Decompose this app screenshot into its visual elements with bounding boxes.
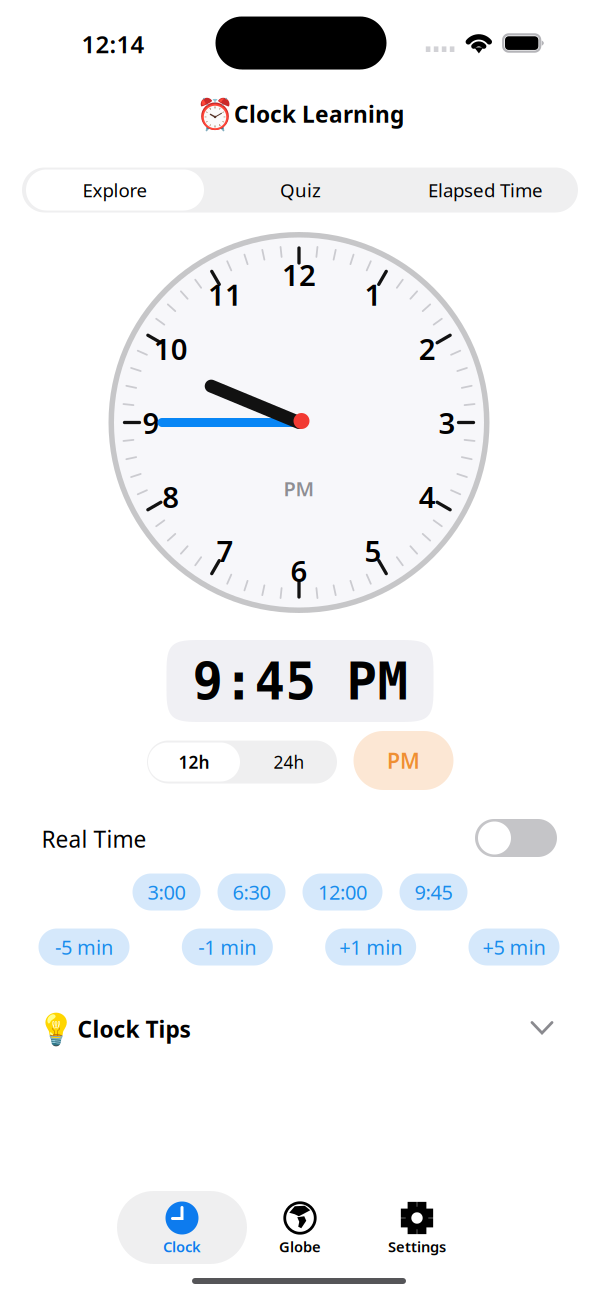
staticText: Globe [279, 1237, 321, 1256]
staticText: 12h [178, 750, 209, 773]
staticText: ⏰ [196, 97, 234, 132]
button[interactable]: 6:30 [217, 873, 285, 910]
staticText: 6 [290, 551, 307, 590]
staticText: 12 [282, 255, 316, 294]
staticText: 4 [419, 477, 436, 516]
staticText: Clock Tips [77, 1014, 190, 1044]
button[interactable]: Settings [352, 1191, 482, 1264]
button[interactable]: 12h [148, 742, 240, 781]
staticText: 9 [142, 403, 159, 442]
button[interactable]: Elapsed Time [395, 167, 575, 212]
staticText: PM [346, 653, 408, 711]
button[interactable]: -5 min [38, 928, 129, 965]
staticText: 7 [216, 531, 233, 570]
button[interactable]: -1 min [182, 928, 273, 965]
staticText: Settings [388, 1237, 446, 1256]
staticText: -1 min [198, 934, 256, 960]
button[interactable]: 24h [243, 742, 335, 781]
button[interactable]: +1 min [325, 928, 416, 965]
staticText: 1 [364, 275, 381, 314]
staticText: 11 [208, 275, 242, 314]
staticText: 9:45 [414, 879, 452, 905]
button[interactable]: Clock [117, 1191, 247, 1264]
button[interactable]: 9:45 [399, 873, 467, 910]
button[interactable]: Quiz [210, 167, 390, 212]
staticText: Real Time [41, 824, 146, 854]
button[interactable]: 💡 [22, 1002, 578, 1058]
staticText: 💡 [37, 1012, 75, 1047]
button[interactable]: Real Time [475, 819, 557, 857]
staticText: PM [387, 746, 420, 775]
staticText: 5 [364, 531, 381, 570]
staticText: Clock Learning [234, 99, 404, 129]
button[interactable]: Explore [26, 169, 204, 210]
staticText: Elapsed Time [428, 178, 543, 202]
button[interactable]: 3:00 [132, 873, 200, 910]
staticText: Explore [82, 178, 147, 202]
staticText: +1 min [339, 934, 402, 960]
staticText: Quiz [280, 178, 321, 202]
staticText: 3:00 [147, 879, 185, 905]
staticText: 12:00 [318, 879, 367, 905]
button[interactable]: 12:00 [302, 873, 382, 910]
staticText: 12:14 [81, 28, 144, 60]
staticText: 8 [162, 477, 179, 516]
staticText: 3 [438, 403, 455, 442]
staticText: 9:45 [192, 653, 316, 711]
button[interactable]: Globe [235, 1191, 365, 1264]
staticText: Clock [163, 1237, 201, 1256]
staticText: PM [283, 475, 314, 502]
staticText: 10 [154, 329, 188, 368]
staticText: +5 min [482, 934, 545, 960]
staticText: 2 [419, 329, 436, 368]
button[interactable]: PM [353, 731, 453, 790]
button[interactable]: +5 min [468, 928, 559, 965]
staticText: 6:30 [232, 879, 270, 905]
staticText: -5 min [55, 934, 113, 960]
staticText: 24h [273, 750, 304, 773]
